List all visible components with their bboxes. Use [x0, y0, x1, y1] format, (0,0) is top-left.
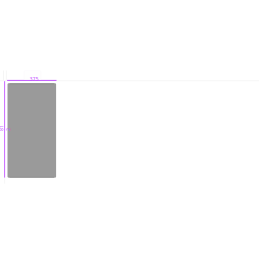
staticText: 812: [2, 121, 8, 135]
staticText: 375: [29, 75, 38, 82]
